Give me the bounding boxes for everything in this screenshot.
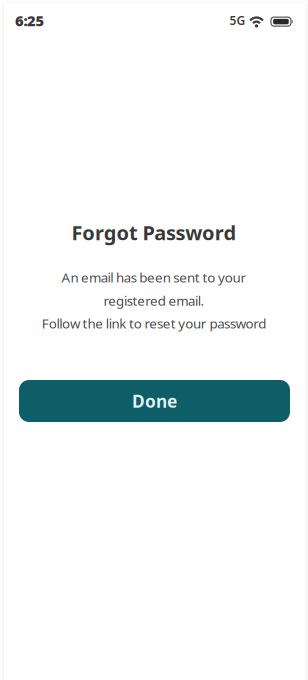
staticText: 5G [229, 12, 245, 28]
staticText: Done [132, 389, 177, 412]
staticText: Follow the link to reset your password [42, 314, 266, 332]
staticText: An email has been sent to your [62, 268, 246, 286]
staticText: registered email. [103, 292, 204, 309]
button[interactable]: Done [19, 380, 290, 422]
staticText: Forgot Password [72, 219, 236, 246]
staticText: 6:25 [15, 11, 45, 30]
